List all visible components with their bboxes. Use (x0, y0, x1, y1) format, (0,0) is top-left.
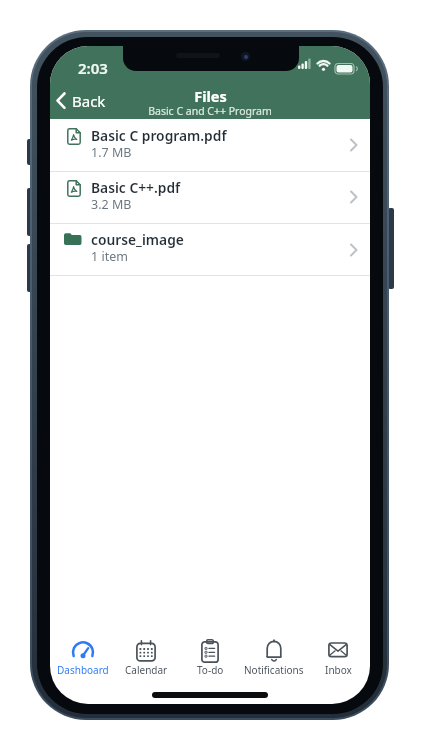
staticText: 3.2 MB (91, 196, 132, 213)
staticText: Calendar (125, 663, 168, 677)
staticText: Files (194, 86, 227, 106)
staticText: course_image (91, 230, 184, 249)
staticText: Notifications (244, 663, 304, 677)
staticText: Inbox (325, 663, 352, 677)
staticText: 2:03 (78, 58, 108, 78)
staticText: Basic C program.pdf (91, 126, 227, 145)
staticText: 1 item (91, 248, 128, 265)
staticText: Dashboard (57, 663, 109, 677)
staticText: Basic C and C++ Program (148, 104, 272, 118)
staticText: 1.7 MB (91, 144, 132, 161)
staticText: To-do (197, 663, 224, 677)
staticText: Basic C++.pdf (91, 178, 181, 197)
staticText: Back (72, 91, 106, 111)
